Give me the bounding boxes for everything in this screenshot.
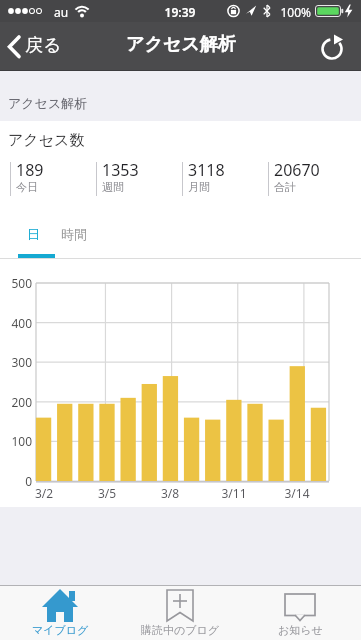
staticText: 戻る	[25, 34, 62, 57]
staticText: 3118	[188, 159, 225, 181]
button[interactable]: お知らせ	[240, 586, 361, 640]
staticText: 合計	[274, 180, 296, 194]
staticText: 3/8	[150, 485, 190, 501]
staticText: マイブログ	[32, 623, 89, 637]
button[interactable]	[10, 158, 96, 198]
staticText: 今日	[16, 180, 38, 194]
staticText: 500	[2, 275, 32, 291]
staticText: アクセス解析	[8, 95, 88, 111]
button[interactable]: 戻る	[0, 22, 80, 71]
staticText: 19:39	[158, 4, 202, 20]
staticText: 189	[16, 159, 44, 181]
button[interactable]	[314, 22, 361, 71]
staticText: 0	[2, 473, 32, 489]
staticText: 3/11	[214, 485, 254, 501]
staticText: 3/5	[87, 485, 127, 501]
button[interactable]	[182, 158, 268, 198]
staticText: au	[54, 4, 69, 20]
staticText: 100%	[274, 4, 311, 20]
staticText: 1353	[102, 159, 139, 181]
staticText: 月間	[188, 180, 210, 194]
staticText: 300	[2, 354, 32, 370]
staticText: お知らせ	[278, 623, 323, 637]
staticText: アクセス解析	[126, 33, 236, 56]
button[interactable]	[268, 158, 354, 198]
staticText: 時間	[61, 226, 87, 242]
staticText: 購読中のブログ	[141, 623, 220, 637]
staticText: 400	[2, 315, 32, 331]
button[interactable]	[96, 158, 182, 198]
staticText: 週間	[102, 180, 124, 194]
staticText: 20670	[274, 159, 320, 181]
staticText: 3/2	[24, 485, 64, 501]
staticText: 3/14	[277, 485, 317, 501]
staticText: 日	[27, 226, 40, 242]
button[interactable]: 購読中のブログ	[120, 586, 240, 640]
staticText: アクセス数	[8, 131, 85, 150]
button[interactable]: マイブログ	[0, 586, 120, 640]
staticText: 200	[2, 394, 32, 410]
staticText: 100	[2, 433, 32, 449]
